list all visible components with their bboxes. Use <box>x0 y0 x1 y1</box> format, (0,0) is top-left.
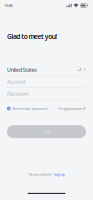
staticText: Password <box>7 90 29 97</box>
button[interactable]: Login <box>7 125 86 138</box>
button[interactable]: Forgot password? <box>58 106 86 111</box>
button[interactable]: No account yet? <box>28 172 65 177</box>
button[interactable]: Remember password <box>7 106 47 111</box>
staticText: United States <box>7 66 37 73</box>
staticText: Login <box>42 129 51 134</box>
staticText: Forgot password? <box>58 106 86 111</box>
staticText: +1 <box>77 67 81 72</box>
staticText: Sign up <box>54 172 65 177</box>
staticText: Remember password <box>12 106 47 111</box>
button[interactable]: United States <box>7 64 86 76</box>
staticText: Glad to meet you! <box>7 32 57 41</box>
staticText: No account yet? <box>28 172 53 177</box>
staticText: 10:40 <box>4 3 13 8</box>
staticText: Account <box>7 78 26 85</box>
